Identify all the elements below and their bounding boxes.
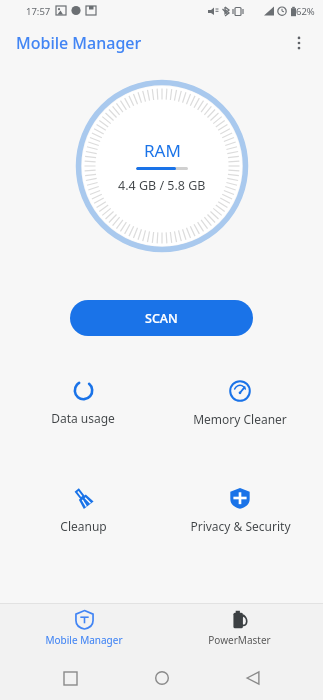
button[interactable]: Mobile Manager <box>14 604 154 656</box>
button[interactable]: Memory Cleaner <box>165 378 315 429</box>
other: Cleanup <box>72 487 94 509</box>
staticText: Memory Cleaner <box>193 411 287 427</box>
button[interactable]: Privacy and Security <box>165 485 315 536</box>
staticText: 4.4 GB / 5.8 GB <box>118 177 206 194</box>
button[interactable]: PowerMaster <box>169 604 309 656</box>
staticText: RAM <box>144 139 181 162</box>
other: Data usage <box>73 380 94 401</box>
staticText: PowerMaster <box>208 633 271 647</box>
staticText: SCAN <box>145 310 178 327</box>
staticText: 62% <box>296 5 315 18</box>
staticText: Mobile Manager <box>16 32 142 54</box>
other: Memory Cleaner <box>229 380 251 402</box>
button[interactable]: SCAN <box>70 300 253 336</box>
staticText: Data usage <box>51 410 115 426</box>
button[interactable]: Cleanup <box>8 485 158 536</box>
button[interactable]: Back <box>231 656 275 700</box>
staticText: 17:57 <box>26 5 51 18</box>
staticText: Privacy & Security <box>190 518 291 534</box>
button[interactable]: Data usage <box>8 378 158 428</box>
button[interactable]: Recent apps <box>48 656 92 700</box>
button[interactable]: More options <box>281 25 317 61</box>
other: Privacy and Security <box>229 487 251 509</box>
button[interactable]: Home <box>140 656 184 700</box>
staticText: Mobile Manager <box>45 633 123 647</box>
staticText: Cleanup <box>60 518 107 534</box>
